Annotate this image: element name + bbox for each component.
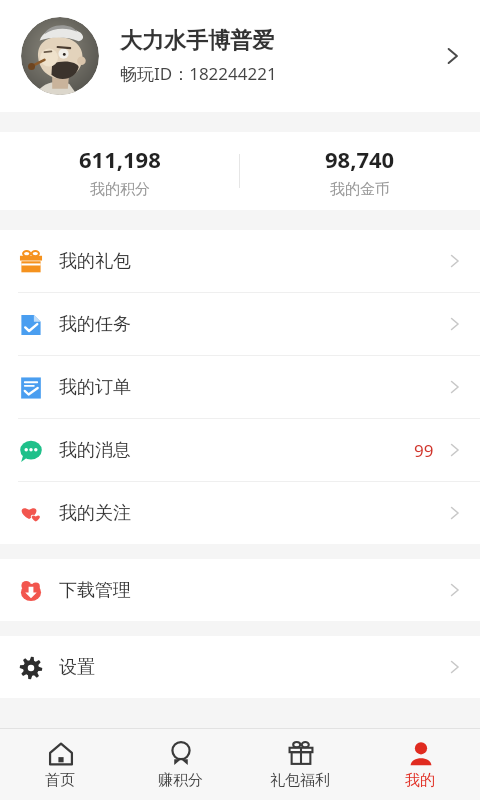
- staticText: 我的: [405, 771, 435, 790]
- button[interactable]: 我的: [360, 734, 480, 795]
- staticText: 我的礼包: [59, 250, 131, 273]
- button[interactable]: 611,198: [0, 138, 239, 205]
- staticText: 畅玩ID：182244221: [120, 62, 277, 85]
- button[interactable]: 我的礼包: [0, 230, 480, 292]
- staticText: 98,740: [325, 144, 395, 174]
- staticText: 大力水手博普爱: [120, 27, 274, 55]
- button[interactable]: 我的任务: [0, 293, 480, 355]
- button[interactable]: 我的关注: [0, 482, 480, 544]
- staticText: 首页: [45, 771, 75, 790]
- staticText: 礼包福利: [270, 771, 330, 790]
- button[interactable]: 我的消息: [0, 419, 480, 481]
- button[interactable]: 礼包福利: [240, 734, 360, 795]
- staticText: 611,198: [79, 144, 161, 174]
- staticText: 我的关注: [59, 502, 131, 525]
- staticText: 99: [414, 439, 434, 462]
- staticText: 我的订单: [59, 376, 131, 399]
- staticText: 我的积分: [90, 180, 150, 199]
- button[interactable]: 首页: [0, 734, 120, 795]
- button[interactable]: 设置: [0, 636, 480, 698]
- button[interactable]: 我的订单: [0, 356, 480, 418]
- button[interactable]: 98,740: [240, 138, 480, 205]
- staticText: 设置: [59, 656, 95, 679]
- staticText: 下载管理: [59, 579, 131, 602]
- staticText: 我的任务: [59, 313, 131, 336]
- button[interactable]: 大力水手博普爱: [0, 0, 480, 112]
- button[interactable]: 下载管理: [0, 559, 480, 621]
- staticText: 我的消息: [59, 439, 131, 462]
- staticText: 我的金币: [330, 180, 390, 199]
- staticText: 赚积分: [158, 771, 203, 790]
- button[interactable]: 赚积分: [120, 734, 240, 795]
- other: Edit profile: [440, 43, 466, 69]
